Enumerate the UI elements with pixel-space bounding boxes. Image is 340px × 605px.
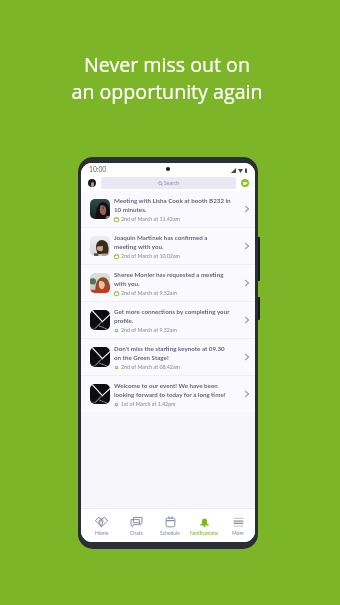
staticText: More — [232, 530, 244, 536]
staticText: Search — [164, 180, 180, 186]
staticText: EP — [243, 181, 248, 185]
staticText: 2nd of March at 11.42am — [121, 216, 180, 222]
staticText: Schedule — [160, 530, 180, 536]
button[interactable]: Profile — [88, 179, 96, 187]
staticText: Get more connections by completing your … — [114, 308, 231, 325]
staticText: 2nd of March at 08.42am — [121, 364, 180, 370]
button[interactable]: Chats — [119, 512, 153, 540]
staticText: 1st of March at 1.42pm — [121, 401, 176, 407]
button[interactable]: Welcome to our event! We have been looki… — [81, 376, 255, 412]
staticText: Chats — [130, 530, 143, 536]
staticText: Joaquin Martinek has confirmed a meeting… — [114, 234, 231, 251]
button[interactable]: Don't miss the starting keynote at 09.30… — [81, 339, 255, 375]
staticText: 2nd of March at 9.32am — [121, 327, 177, 333]
staticText: Notifications — [190, 530, 219, 536]
button[interactable]: Joaquin Martinek has confirmed a meeting… — [81, 228, 255, 264]
button[interactable]: Get more connections by completing your … — [81, 302, 255, 338]
button[interactable]: Sheree Monier has requested a meeting wi… — [81, 265, 255, 301]
staticText: 2nd of March at 9.52am — [121, 290, 177, 296]
button[interactable]: Meeting with Lisha Cook at booth B232 in… — [81, 191, 255, 227]
button[interactable]: Notifications — [187, 512, 221, 540]
staticText: 2nd of March at 10.02am — [121, 253, 180, 259]
staticText: Don't miss the starting keynote at 09.30… — [114, 345, 231, 362]
button[interactable]: Schedule — [153, 512, 187, 540]
staticText: 10:00 — [89, 165, 107, 173]
staticText: Home — [95, 530, 109, 536]
staticText: Never miss out on — [84, 51, 250, 78]
button[interactable]: More — [221, 512, 255, 540]
button[interactable]: Event badge — [241, 179, 249, 187]
staticText: an opportunity again — [71, 78, 263, 105]
staticText: Sheree Monier has requested a meeting wi… — [114, 271, 231, 288]
button[interactable]: Search — [101, 177, 236, 189]
staticText: Meeting with Lisha Cook at booth B232 in… — [114, 197, 231, 214]
staticText: Welcome to our event! We have been looki… — [114, 382, 231, 399]
button[interactable]: Home — [84, 512, 119, 540]
